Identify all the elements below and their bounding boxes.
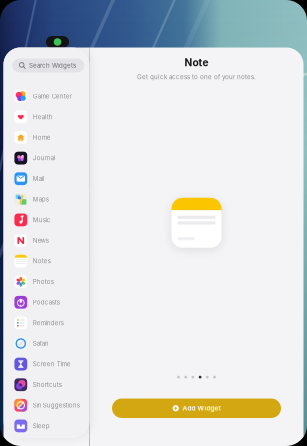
- staticText: Photos: [33, 278, 54, 285]
- button[interactable]: Game Center: [3, 86, 89, 107]
- staticText: Music: [33, 216, 51, 224]
- button[interactable]: Reminders: [3, 313, 89, 333]
- button[interactable]: Maps: [3, 189, 89, 210]
- button[interactable]: Siri Suggestions: [3, 395, 89, 416]
- button[interactable]: Notes: [3, 251, 89, 271]
- staticText: Add Widget: [182, 404, 220, 412]
- staticText: Safari: [33, 340, 48, 347]
- staticText: Shortcuts: [33, 381, 62, 388]
- button[interactable]: Mail: [3, 168, 89, 189]
- staticText: Mail: [33, 175, 44, 182]
- button[interactable]: Journal: [3, 148, 89, 168]
- button[interactable]: Photos: [3, 271, 89, 292]
- staticText: Maps: [33, 196, 49, 203]
- button[interactable]: Screen Time: [3, 354, 89, 374]
- staticText: Home: [33, 134, 51, 141]
- button[interactable]: Health: [3, 107, 89, 127]
- staticText: Screen Time: [33, 360, 71, 368]
- staticText: Podcasts: [33, 299, 60, 306]
- staticText: Sleep: [33, 422, 50, 430]
- staticText: Reminders: [33, 319, 64, 327]
- staticText: Search Widgets: [29, 62, 76, 69]
- button[interactable]: Sleep: [3, 416, 89, 436]
- button[interactable]: Search Widgets: [12, 58, 84, 72]
- staticText: Siri Suggestions: [33, 402, 80, 409]
- button[interactable]: News: [3, 230, 89, 251]
- staticText: Health: [33, 113, 53, 121]
- button[interactable]: Add Widget: [112, 398, 281, 418]
- staticText: Get quick access to one of your notes.: [137, 73, 256, 81]
- button[interactable]: Shortcuts: [3, 374, 89, 395]
- button[interactable]: Safari: [3, 333, 89, 354]
- staticText: News: [33, 237, 49, 244]
- staticText: Note: [184, 56, 208, 69]
- button[interactable]: Podcasts: [3, 292, 89, 313]
- button[interactable]: Home: [3, 127, 89, 148]
- button[interactable]: Music: [3, 210, 89, 230]
- staticText: Journal: [33, 154, 55, 162]
- staticText: Game Center: [33, 93, 72, 100]
- staticText: Notes: [33, 257, 51, 265]
